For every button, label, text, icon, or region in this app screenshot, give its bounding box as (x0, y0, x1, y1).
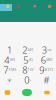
button[interactable]: 3 (37, 45, 55, 55)
staticText: 7 (3, 64, 8, 76)
button[interactable]: 2 (19, 45, 37, 55)
button[interactable]: Delete (44, 91, 50, 94)
button[interactable]: Call (22, 89, 32, 96)
button[interactable]: 9 (37, 65, 55, 75)
staticText: GHI (10, 58, 15, 62)
staticText: 6 (41, 54, 46, 66)
button[interactable]: 4 (0, 55, 18, 65)
staticText: ∗ (6, 75, 12, 85)
staticText: 3 (42, 44, 47, 56)
button[interactable]: 1 (0, 45, 18, 55)
staticText: ABC (28, 48, 34, 52)
staticText: 4 (4, 54, 9, 66)
staticText: 1 (7, 44, 12, 56)
staticText: # (43, 74, 49, 86)
staticText: DEF (47, 48, 51, 52)
staticText: WXYZ (45, 68, 54, 72)
staticText: 5 (23, 54, 28, 66)
button[interactable]: 0 (19, 75, 37, 85)
staticText: JKL (29, 58, 33, 62)
button[interactable]: 8 (19, 65, 37, 75)
staticText: TUV (28, 68, 34, 72)
button[interactable]: Contact (33, 5, 36, 8)
button[interactable]: Voicemail (5, 90, 10, 95)
button[interactable]: Contact (48, 5, 51, 8)
staticText: + (30, 78, 32, 82)
staticText: MNO (46, 58, 52, 62)
staticText: 8 (22, 64, 27, 76)
button[interactable]: ∗ (0, 75, 18, 85)
button[interactable]: Contact (17, 5, 20, 8)
staticText: 9 (39, 64, 44, 76)
button[interactable]: 6 (37, 55, 55, 65)
button[interactable]: 7 (0, 65, 18, 75)
button[interactable]: # (37, 75, 55, 85)
staticText: 0 (24, 74, 29, 86)
staticText: 2 (22, 44, 27, 56)
staticText: PQRS (9, 68, 16, 72)
button[interactable]: 5 (19, 55, 37, 65)
